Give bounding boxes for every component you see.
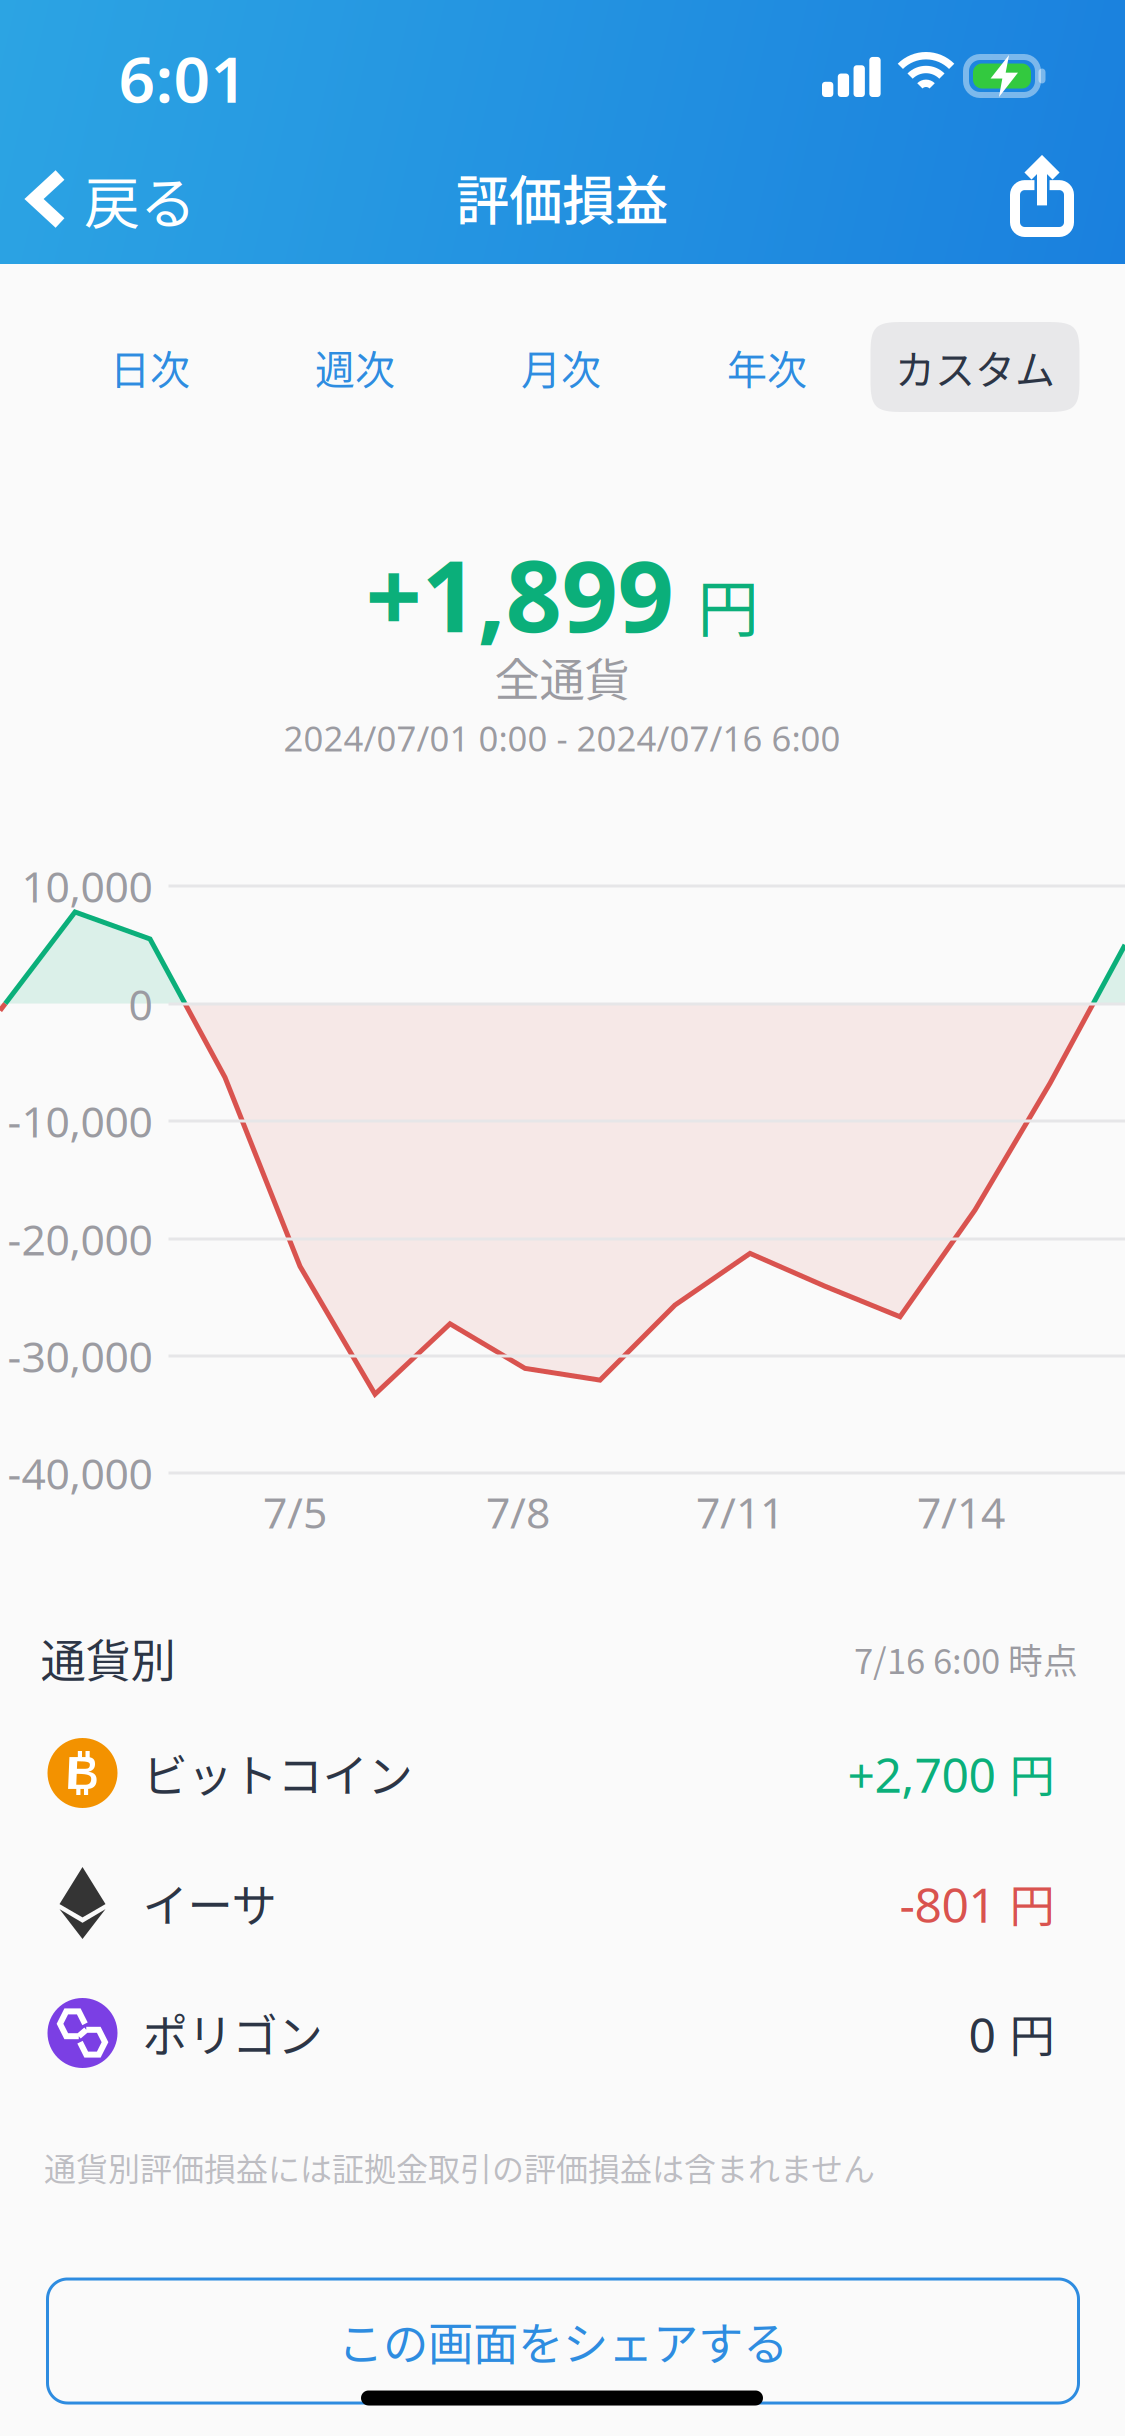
- staticText: 7/5: [263, 1484, 327, 1540]
- staticText: 円: [1009, 1740, 1054, 1806]
- staticText: 戻る: [84, 158, 196, 240]
- staticText: 2024/07/01 0:00 - 2024/07/16 6:00: [283, 715, 840, 761]
- staticText: 円: [1009, 1870, 1054, 1936]
- staticText: 週次: [315, 338, 395, 396]
- staticText: 日次: [110, 338, 190, 396]
- staticText: 7/8: [486, 1484, 550, 1540]
- staticText: 通貨別評価損益には証拠金取引の評価損益は含まれません: [44, 2144, 875, 2190]
- staticText: -801: [899, 1872, 995, 1936]
- staticText: 評価損益: [456, 158, 668, 236]
- staticText: 6:01: [118, 35, 247, 120]
- staticText: 0: [968, 2002, 995, 2066]
- button[interactable]: 週次: [250, 322, 459, 412]
- staticText: -30,000: [7, 1328, 152, 1384]
- staticText: 7/14: [917, 1484, 1005, 1540]
- staticText: この画面をシェアする: [338, 2308, 788, 2374]
- button[interactable]: 戻る: [0, 139, 230, 259]
- button[interactable]: イーサ: [0, 1839, 1124, 1967]
- staticText: +1,899: [365, 528, 673, 659]
- staticText: 7/16 6:00 時点: [854, 1634, 1078, 1684]
- staticText: 月次: [521, 338, 601, 396]
- staticText: 全通貨: [494, 644, 629, 710]
- button[interactable]: 年次: [662, 322, 871, 412]
- button[interactable]: Share: [987, 142, 1097, 252]
- button[interactable]: ポリゴン: [0, 1969, 1124, 2097]
- staticText: 年次: [727, 338, 807, 396]
- staticText: 通貨別: [40, 1625, 175, 1691]
- staticText: イーサ: [142, 1870, 276, 1936]
- button[interactable]: ビットコイン: [0, 1709, 1124, 1837]
- staticText: 0: [128, 976, 152, 1032]
- staticText: -20,000: [7, 1211, 152, 1267]
- staticText: 円: [1009, 2000, 1054, 2066]
- button[interactable]: 月次: [456, 322, 665, 412]
- staticText: 7/11: [696, 1484, 784, 1540]
- button[interactable]: 日次: [45, 322, 254, 412]
- staticText: ポリゴン: [142, 2000, 322, 2066]
- staticText: -10,000: [7, 1093, 152, 1149]
- button[interactable]: カスタム: [870, 322, 1079, 412]
- staticText: 10,000: [21, 858, 152, 914]
- staticText: +2,700: [847, 1742, 995, 1806]
- staticText: ビットコイン: [142, 1740, 412, 1806]
- button[interactable]: この画面をシェアする: [47, 2279, 1078, 2403]
- staticText: 円: [697, 561, 758, 649]
- staticText: -40,000: [7, 1445, 152, 1501]
- staticText: カスタム: [895, 338, 1055, 396]
